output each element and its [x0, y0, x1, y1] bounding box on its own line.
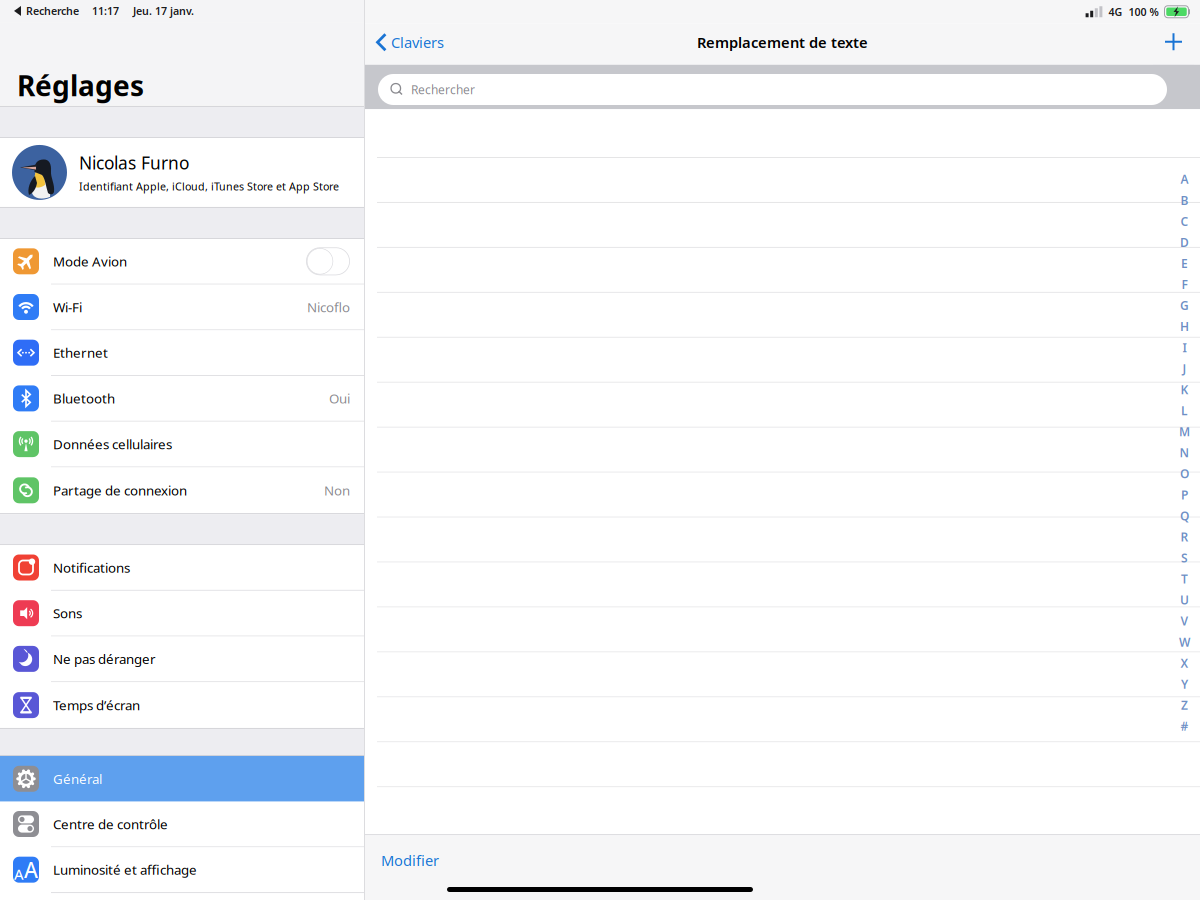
staticText: Z: [1181, 697, 1188, 713]
staticText: Modifier: [381, 850, 439, 870]
button[interactable]: Notifications: [0, 545, 364, 591]
staticText: Notifications: [53, 559, 130, 576]
staticText: T: [1181, 571, 1188, 587]
staticText: L: [1181, 403, 1188, 418]
staticText: Nicoflo: [307, 298, 350, 316]
staticText: E: [1181, 255, 1188, 271]
button[interactable]: Modifier: [365, 835, 605, 879]
staticText: P: [1181, 487, 1188, 503]
staticText: Centre de contrôle: [53, 815, 168, 833]
staticText: Ne pas déranger: [53, 650, 156, 668]
staticText: 100 %: [1128, 5, 1158, 19]
button[interactable]: Ne pas déranger: [0, 636, 364, 682]
staticText: Nicolas Furno: [79, 151, 189, 174]
staticText: Rechercher: [411, 81, 475, 97]
staticText: Luminosité et affichage: [53, 861, 197, 878]
staticText: H: [1180, 318, 1189, 334]
staticText: G: [1180, 297, 1189, 313]
staticText: C: [1180, 213, 1188, 229]
staticText: Partage de connexion: [53, 481, 187, 499]
staticText: Bluetooth: [53, 389, 115, 407]
button[interactable]: Partage de connexion: [0, 467, 364, 513]
staticText: O: [1180, 466, 1189, 482]
staticText: A: [14, 864, 24, 884]
staticText: Y: [1181, 676, 1188, 692]
button[interactable]: Ajouter: [1153, 24, 1194, 65]
staticText: #: [1180, 718, 1188, 734]
staticText: I: [1182, 339, 1186, 355]
staticText: 4G: [1108, 5, 1122, 19]
staticText: U: [1180, 592, 1189, 608]
staticText: X: [1180, 655, 1188, 671]
staticText: A: [24, 855, 38, 884]
staticText: B: [1180, 192, 1188, 208]
staticText: W: [1179, 634, 1190, 650]
button[interactable]: Nicolas Furno: [0, 138, 364, 207]
staticText: V: [1180, 613, 1188, 629]
staticText: Oui: [329, 389, 350, 407]
staticText: Recherche: [26, 4, 79, 18]
staticText: Remplacement de texte: [697, 32, 868, 52]
staticText: Mode Avion: [53, 252, 127, 270]
staticText: Jeu. 17 janv.: [133, 4, 194, 18]
staticText: Q: [1180, 508, 1189, 524]
button[interactable]: Données cellulaires: [0, 422, 364, 467]
button[interactable]: Bluetooth: [0, 376, 364, 422]
staticText: A: [1180, 171, 1188, 187]
staticText: Wi-Fi: [53, 298, 82, 316]
staticText: M: [1179, 424, 1190, 440]
staticText: Identifiant Apple, iCloud, iTunes Store …: [79, 179, 339, 194]
staticText: N: [1179, 445, 1189, 461]
button[interactable]: A: [0, 847, 364, 893]
staticText: Temps d’écran: [53, 696, 140, 714]
staticText: R: [1180, 529, 1188, 545]
staticText: Réglages: [17, 67, 144, 104]
staticText: K: [1180, 382, 1188, 397]
button[interactable]: Claviers: [365, 24, 452, 65]
staticText: Général: [53, 770, 102, 788]
button[interactable]: Wi-Fi: [0, 285, 364, 330]
button[interactable]: Général: [0, 756, 364, 802]
button[interactable]: Temps d’écran: [0, 682, 364, 728]
staticText: Sons: [53, 604, 82, 622]
staticText: Non: [324, 481, 350, 499]
staticText: 11:17: [92, 4, 119, 18]
staticText: Ethernet: [53, 344, 108, 361]
staticText: J: [1182, 360, 1186, 376]
staticText: S: [1181, 550, 1188, 566]
staticText: Claviers: [391, 32, 444, 52]
button[interactable]: Sons: [0, 591, 364, 636]
staticText: F: [1181, 276, 1187, 292]
staticText: Données cellulaires: [53, 435, 172, 453]
button[interactable]: Mode Avion: [0, 239, 364, 285]
button[interactable]: Ethernet: [0, 330, 364, 376]
button[interactable]: Centre de contrôle: [0, 802, 364, 847]
staticText: D: [1180, 234, 1189, 250]
